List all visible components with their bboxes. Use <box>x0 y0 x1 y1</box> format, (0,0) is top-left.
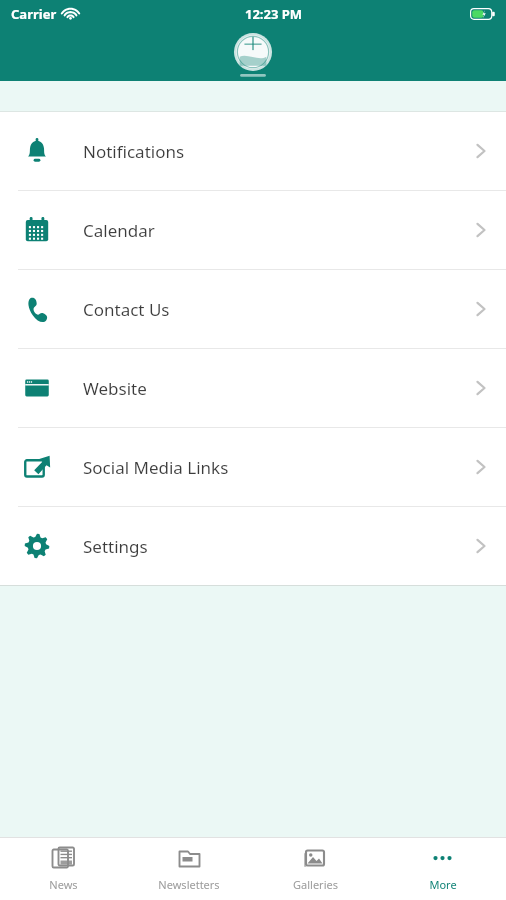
button[interactable]: Website <box>0 349 506 427</box>
staticText: News <box>49 877 78 892</box>
staticText: Social Media Links <box>83 456 229 479</box>
staticText: Galleries <box>293 877 338 892</box>
button[interactable]: Galleries <box>252 838 379 900</box>
staticText: Settings <box>83 535 148 558</box>
staticText: Website <box>83 377 147 400</box>
staticText: Contact Us <box>83 298 170 321</box>
button[interactable]: Notifications <box>0 112 506 190</box>
staticText: Notifications <box>83 140 185 163</box>
button[interactable]: Calendar <box>0 191 506 269</box>
button[interactable]: Contact Us <box>0 270 506 348</box>
button[interactable]: Newsletters <box>126 838 252 900</box>
staticText: Newsletters <box>158 877 220 892</box>
staticText: Carrier <box>11 5 57 23</box>
button[interactable]: Social Media Links <box>0 428 506 506</box>
staticText: 12:23 PM <box>245 5 303 23</box>
staticText: More <box>429 877 457 892</box>
button[interactable]: More <box>379 838 506 900</box>
button[interactable]: Settings <box>0 507 506 585</box>
button[interactable]: News <box>0 838 126 900</box>
staticText: Calendar <box>83 219 155 242</box>
